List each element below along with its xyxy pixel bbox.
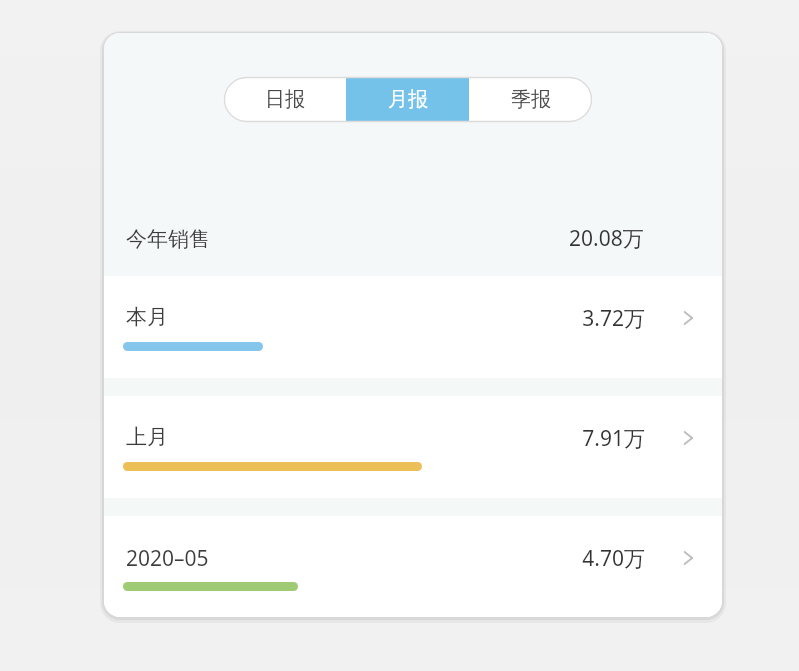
- button[interactable]: 季报: [469, 77, 592, 122]
- button[interactable]: 上月: [104, 396, 722, 498]
- staticText: 今年销售: [126, 226, 210, 252]
- button[interactable]: View details for 上月: [674, 422, 706, 454]
- button[interactable]: View details for 本月: [674, 302, 706, 334]
- button[interactable]: 日报: [224, 77, 346, 122]
- staticText: 日报: [265, 87, 305, 112]
- staticText: 20.08万: [569, 224, 644, 253]
- button[interactable]: 2020–05: [104, 516, 722, 617]
- staticText: 7.91万: [582, 424, 645, 453]
- staticText: 本月: [126, 304, 168, 330]
- staticText: 季报: [511, 87, 551, 112]
- button[interactable]: 月报: [346, 77, 469, 122]
- button[interactable]: View details for 2020–05: [674, 542, 706, 574]
- button[interactable]: 今年销售: [104, 201, 722, 276]
- staticText: 4.70万: [582, 544, 645, 573]
- staticText: 3.72万: [582, 304, 645, 333]
- staticText: 月报: [388, 87, 428, 112]
- button[interactable]: 本月: [104, 276, 722, 378]
- staticText: 上月: [126, 424, 168, 450]
- staticText: 2020–05: [126, 544, 209, 573]
